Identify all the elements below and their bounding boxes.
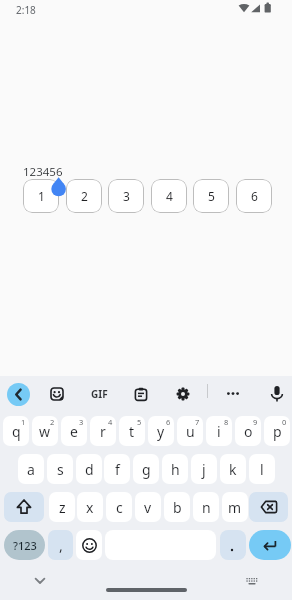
staticText: w [39, 422, 51, 441]
button[interactable] [7, 383, 30, 406]
staticText: s [57, 460, 64, 479]
staticText: 0 [282, 417, 287, 427]
button[interactable]: 4 [151, 179, 187, 213]
staticText: 6 [166, 417, 171, 427]
button[interactable]: i [206, 416, 232, 446]
button[interactable]: f [104, 454, 130, 484]
button[interactable]: GIF [88, 386, 110, 402]
staticText: GIF [91, 387, 108, 401]
staticText: x [86, 498, 94, 517]
button[interactable]: o [235, 416, 261, 446]
button[interactable]: y [148, 416, 174, 446]
button[interactable]: 5 [193, 179, 229, 213]
button[interactable]: z [49, 492, 75, 522]
staticText: 123456 [23, 164, 63, 180]
staticText: b [173, 498, 182, 517]
staticText: g [142, 460, 151, 479]
staticText: h [171, 460, 180, 479]
button[interactable] [50, 387, 64, 401]
staticText: a [27, 460, 35, 479]
button[interactable]: 1 [23, 179, 59, 213]
staticText: r [100, 422, 106, 441]
staticText: , [59, 536, 63, 555]
staticText: 5 [208, 188, 215, 204]
button[interactable]: e [61, 416, 87, 446]
button[interactable] [33, 574, 47, 586]
staticText: ?123 [13, 538, 37, 553]
button[interactable]: q [3, 416, 29, 446]
staticText: 1 [21, 417, 26, 427]
staticText: 7 [195, 417, 200, 427]
staticText: 4 [108, 417, 113, 427]
button[interactable]: b [164, 492, 190, 522]
button[interactable] [249, 492, 288, 522]
button[interactable]: ?123 [4, 530, 45, 560]
staticText: 1 [38, 188, 45, 204]
staticText: j [202, 460, 206, 479]
staticText: 5 [137, 417, 142, 427]
staticText: 2 [50, 417, 55, 427]
staticText: m [228, 498, 242, 517]
button[interactable]: p [264, 416, 290, 446]
button[interactable]: j [191, 454, 217, 484]
button[interactable]: n [193, 492, 219, 522]
button[interactable]: , [48, 530, 73, 560]
button[interactable]: g [133, 454, 159, 484]
button[interactable] [4, 492, 44, 522]
button[interactable]: k [220, 454, 246, 484]
staticText: 2:18 [16, 3, 36, 17]
staticText: p [273, 422, 282, 441]
staticText: l [260, 460, 264, 479]
button[interactable] [224, 387, 242, 401]
staticText: z [59, 498, 66, 517]
staticText: v [144, 498, 152, 517]
staticText: f [115, 460, 120, 479]
staticText: o [244, 422, 253, 441]
staticText: i [217, 422, 221, 441]
staticText: q [12, 422, 21, 441]
staticText: e [70, 422, 78, 441]
button[interactable]: w [32, 416, 58, 446]
staticText: 3 [123, 188, 130, 204]
button[interactable] [245, 575, 259, 587]
button[interactable] [76, 530, 102, 560]
button[interactable]: c [106, 492, 132, 522]
button[interactable] [249, 530, 291, 560]
button[interactable] [269, 385, 285, 403]
staticText: c [116, 498, 123, 517]
button[interactable] [176, 387, 190, 401]
button[interactable]: r [90, 416, 116, 446]
button[interactable]: l [249, 454, 275, 484]
staticText: 3 [79, 417, 84, 427]
button[interactable] [134, 387, 148, 401]
staticText: t [129, 422, 135, 441]
button[interactable]: 3 [108, 179, 144, 213]
button[interactable]: m [222, 492, 248, 522]
button[interactable]: t [119, 416, 145, 446]
staticText: y [157, 422, 165, 441]
button[interactable]: h [162, 454, 188, 484]
button[interactable]: a [18, 454, 44, 484]
staticText: k [229, 460, 237, 479]
button[interactable]: s [47, 454, 73, 484]
staticText: u [186, 422, 195, 441]
button[interactable]: x [77, 492, 103, 522]
button[interactable]: v [135, 492, 161, 522]
staticText: 9 [253, 417, 258, 427]
staticText: 4 [166, 188, 173, 204]
button[interactable]: 2 [66, 179, 102, 213]
staticText: 8 [224, 417, 229, 427]
staticText: d [85, 460, 94, 479]
button[interactable]: u [177, 416, 203, 446]
staticText: 6 [251, 188, 258, 204]
button[interactable]: d [76, 454, 102, 484]
button[interactable]: 6 [236, 179, 272, 213]
staticText: 2 [81, 188, 88, 204]
button[interactable] [220, 530, 246, 560]
staticText: n [202, 498, 211, 517]
